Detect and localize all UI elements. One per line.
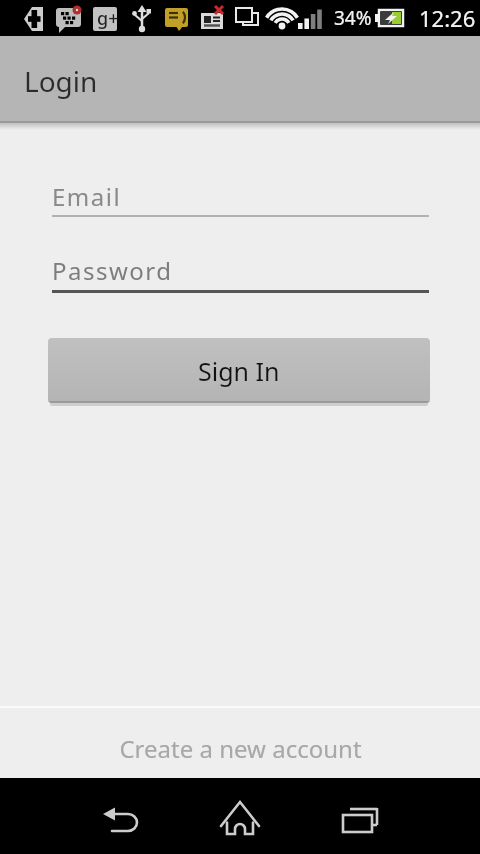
button[interactable]	[160, 778, 320, 854]
button[interactable]: Password	[48, 244, 430, 292]
button[interactable]: Sign In	[48, 338, 430, 403]
staticText: Login	[24, 62, 98, 100]
button[interactable]	[0, 778, 160, 854]
staticText: Email	[52, 180, 122, 213]
staticText: Create a new account	[119, 732, 362, 765]
button[interactable]: Create a new account	[0, 726, 480, 770]
staticText: g+	[97, 6, 119, 31]
staticText: Sign In	[198, 354, 280, 388]
staticText: Password	[52, 254, 173, 287]
staticText: 12:26	[419, 3, 476, 33]
button[interactable]	[320, 778, 480, 854]
button[interactable]: Email	[48, 170, 430, 218]
staticText: 34%	[334, 5, 372, 31]
